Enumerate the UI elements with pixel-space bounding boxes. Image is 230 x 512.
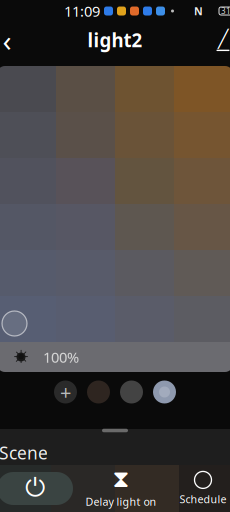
staticText: ‹ [2,20,11,59]
staticText: N [194,4,203,18]
staticText: 100% [43,347,79,367]
staticText: light2 [87,28,142,52]
staticText: 11:09 [64,1,100,21]
button[interactable]: Selected preset [153,380,176,403]
button[interactable]: Edit [203,22,230,58]
staticText: ⏻ [25,476,45,501]
staticText: ╱ [218,29,228,49]
button[interactable]: Back [0,22,27,58]
staticText: ⧗ [112,468,129,492]
button[interactable]: Grey preset [120,380,143,403]
staticText: Delay light on [85,495,156,509]
staticText: Schedule [179,492,226,506]
button[interactable]: ☀ [0,342,230,372]
button[interactable]: ⧗ [81,466,161,510]
staticText: ☀ [12,346,29,368]
button[interactable]: Brown preset [87,380,110,403]
button[interactable]: Power [0,472,73,505]
staticText: 31 [221,6,230,16]
button[interactable] [169,466,230,510]
button[interactable]: Add colour [54,380,77,403]
staticText: Scene [0,441,48,464]
staticText: + [60,379,71,405]
